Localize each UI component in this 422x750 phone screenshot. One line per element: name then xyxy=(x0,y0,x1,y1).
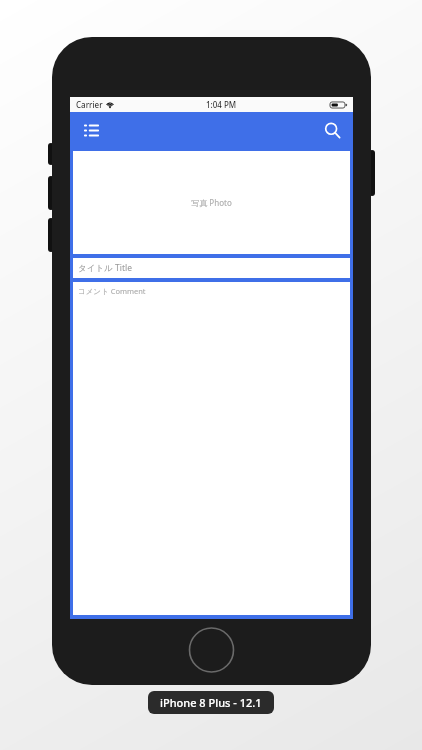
staticText: コメント Comment xyxy=(78,286,146,296)
button[interactable]: Menu xyxy=(76,115,106,145)
staticText: 1:04 PM xyxy=(206,99,237,110)
button[interactable]: 写真 Photo xyxy=(73,151,350,254)
button[interactable]: Search xyxy=(317,115,347,145)
staticText: 写真 Photo xyxy=(191,197,232,208)
staticText: Carrier xyxy=(76,99,103,110)
staticText: タイトル Title xyxy=(78,262,132,274)
button[interactable]: タイトル Title xyxy=(73,258,350,278)
staticText: iPhone 8 Plus - 12.1 xyxy=(160,695,262,710)
